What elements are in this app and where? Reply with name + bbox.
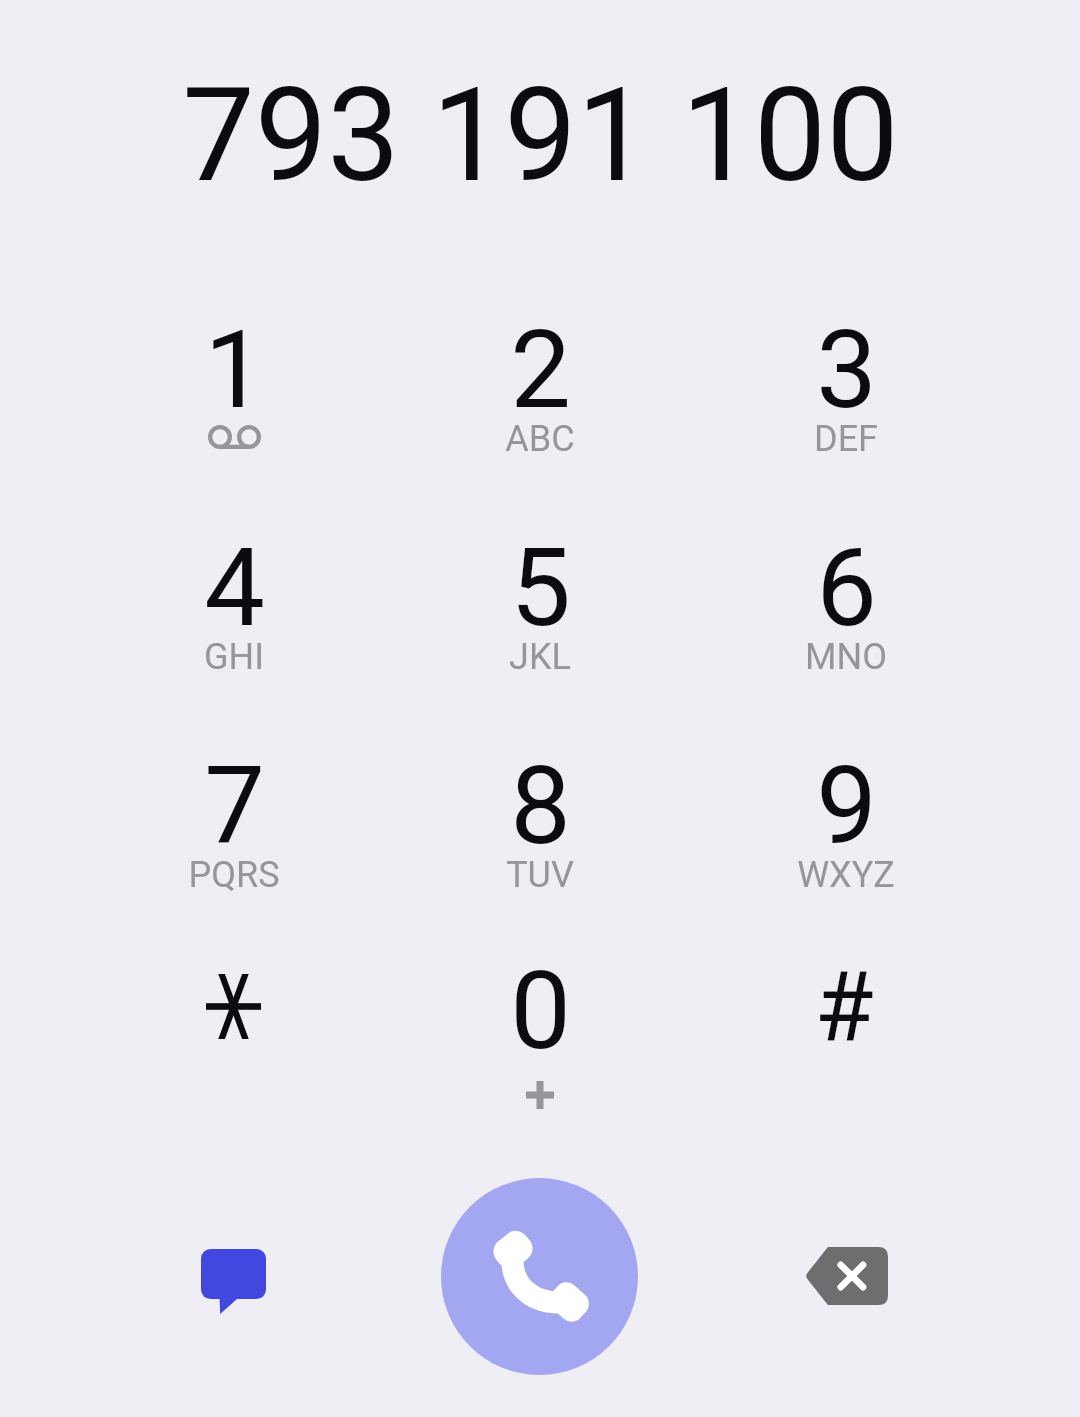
button[interactable]: 7 — [84, 704, 384, 904]
button[interactable]: 5 — [390, 486, 690, 686]
staticText: JKL — [509, 636, 571, 678]
button[interactable]: Backspace — [772, 1203, 920, 1351]
button[interactable]: Call — [441, 1178, 638, 1375]
button[interactable]: Star — [84, 909, 384, 1109]
staticText: 8 — [510, 743, 571, 870]
button[interactable]: 3 — [696, 268, 996, 468]
staticText: # — [814, 951, 874, 1064]
button[interactable]: 4 — [84, 486, 384, 686]
button[interactable]: 0 — [390, 909, 690, 1109]
staticText: 1 — [204, 307, 265, 434]
staticText: 5 — [510, 525, 571, 652]
button[interactable]: 6 — [696, 486, 996, 686]
staticText: TUV — [506, 854, 574, 896]
staticText: WXYZ — [797, 854, 895, 896]
staticText: 7 — [204, 743, 265, 870]
staticText: 0 — [510, 948, 571, 1075]
button[interactable]: Pound — [696, 909, 996, 1109]
staticText: 4 — [204, 525, 265, 652]
staticText: 3 — [816, 307, 877, 434]
button[interactable]: 8 — [390, 704, 690, 904]
staticText: 6 — [816, 525, 877, 652]
staticText: ABC — [505, 418, 575, 460]
staticText: GHI — [204, 636, 264, 678]
staticText: PQRS — [188, 854, 280, 896]
button[interactable]: Message — [160, 1203, 308, 1351]
button[interactable]: 2 — [390, 268, 690, 468]
button[interactable]: 1 — [84, 268, 384, 468]
staticText: 2 — [510, 307, 571, 434]
button[interactable]: 9 — [696, 704, 996, 904]
staticText: DEF — [814, 418, 878, 460]
staticText: 793 191 100 — [182, 60, 899, 211]
staticText: MNO — [805, 636, 887, 678]
staticText: 9 — [816, 743, 877, 870]
